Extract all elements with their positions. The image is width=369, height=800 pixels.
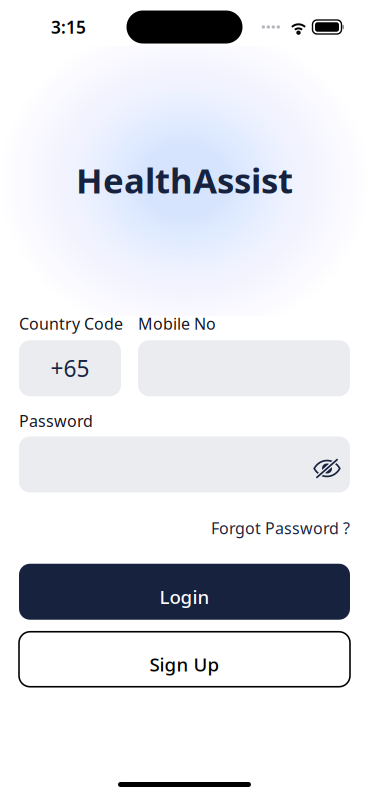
button[interactable]: Sign Up <box>19 632 350 687</box>
staticText: Country Code <box>19 313 123 334</box>
staticText: Login <box>159 584 209 609</box>
staticText: HealthAssist <box>76 157 293 203</box>
button[interactable]: Login <box>19 564 350 620</box>
staticText: 3:15 <box>51 15 86 38</box>
staticText: Mobile No <box>138 313 216 334</box>
button[interactable]: Show password <box>301 436 350 492</box>
staticText: Forgot Password ? <box>211 517 350 539</box>
staticText: Sign Up <box>149 652 219 677</box>
staticText: Password <box>19 410 93 431</box>
button[interactable]: Forgot Password ? <box>211 517 350 547</box>
staticText: +65 <box>50 353 89 383</box>
